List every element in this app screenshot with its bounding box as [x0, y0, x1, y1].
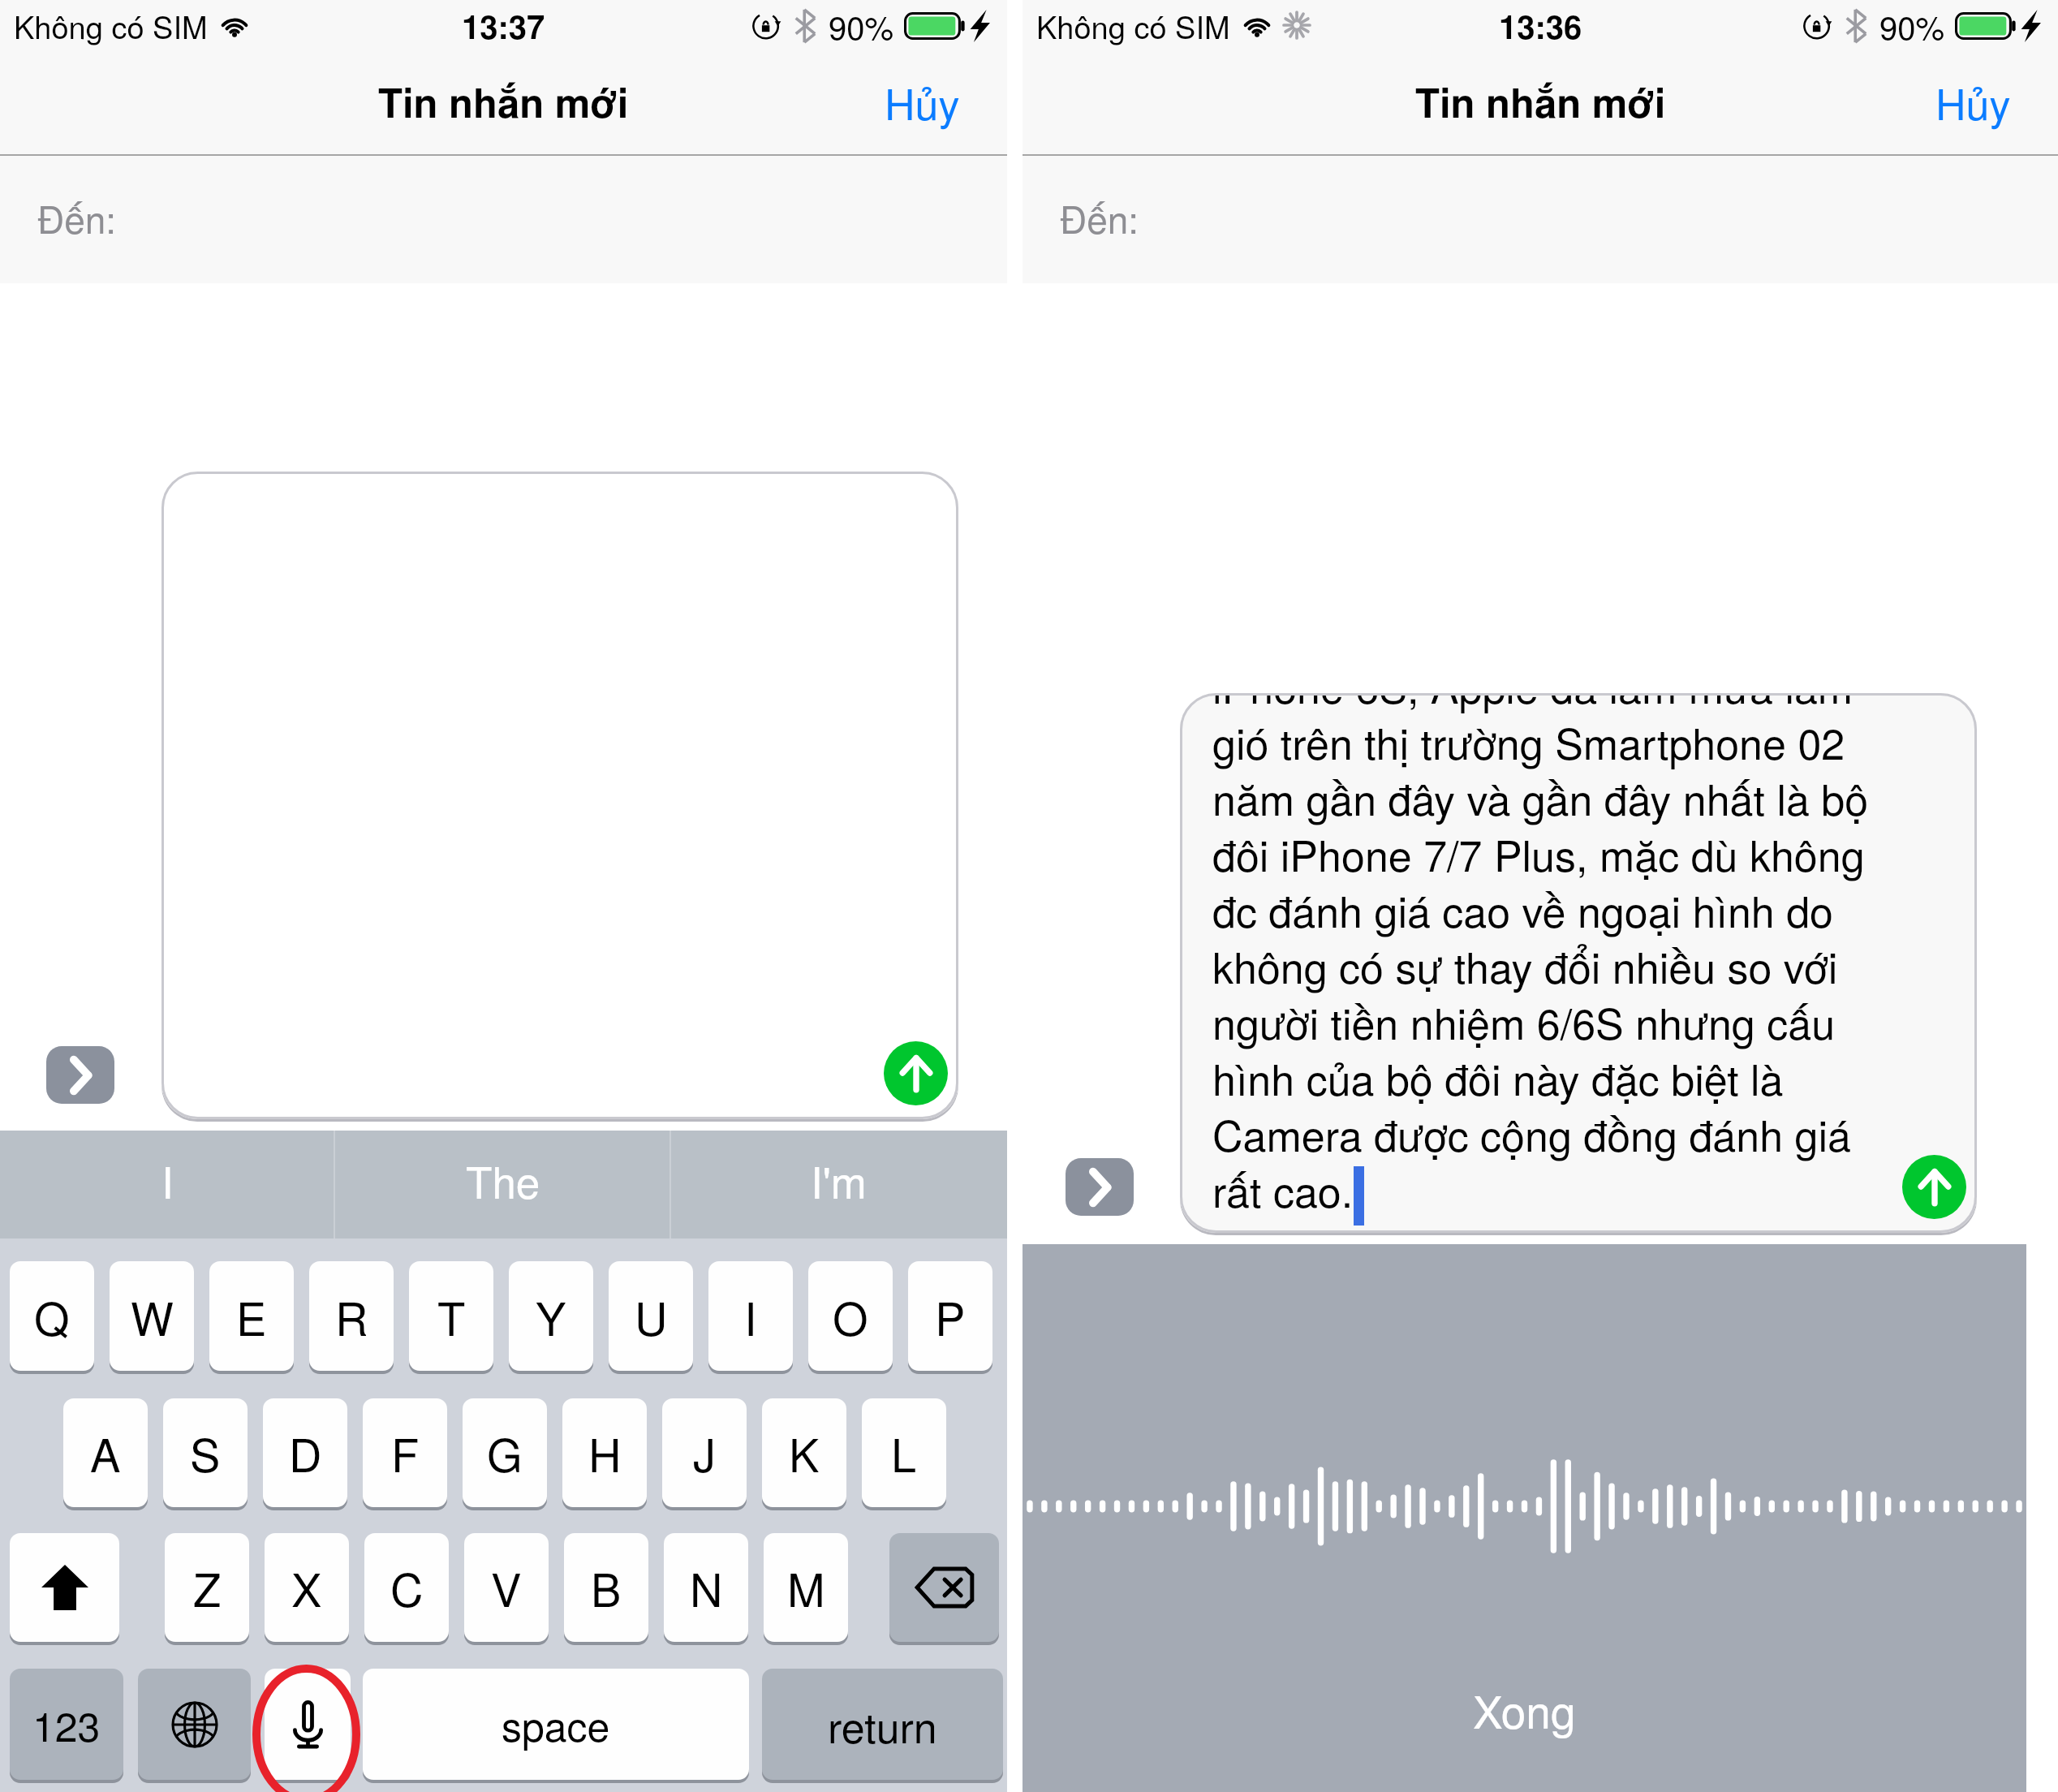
button[interactable]: Xóa	[889, 1533, 999, 1642]
staticText: Không có SIM	[1036, 3, 1230, 47]
button[interactable]: M	[764, 1533, 848, 1642]
staticText: J	[693, 1420, 716, 1485]
staticText: E	[236, 1284, 267, 1349]
button[interactable]: Đọc chính tả	[265, 1669, 351, 1780]
button[interactable]: C	[364, 1533, 449, 1642]
button[interactable]: Gửi	[1902, 1155, 1966, 1219]
staticText: Đến:	[1060, 191, 1139, 244]
staticText: Camera được cộng đồng đánh giá	[1212, 1103, 1851, 1163]
staticText: V	[491, 1555, 522, 1620]
staticText: X	[291, 1555, 322, 1620]
staticText: Hủy	[885, 71, 960, 131]
staticText: R	[335, 1284, 368, 1349]
staticText: Y	[536, 1284, 566, 1349]
staticText: K	[789, 1420, 820, 1485]
staticText: đc đánh giá cao về ngoại hình do	[1212, 879, 1834, 939]
staticText: return	[828, 1695, 937, 1755]
button[interactable]: return	[762, 1669, 1003, 1780]
button[interactable]: space	[363, 1669, 749, 1780]
staticText: C	[390, 1555, 424, 1620]
staticText: người tiền nhiệm 6/6S nhưng cấu	[1212, 991, 1836, 1051]
button[interactable]: I	[0, 1131, 335, 1238]
button[interactable]: I	[708, 1261, 793, 1371]
button[interactable]: S	[163, 1398, 248, 1507]
button[interactable]: V	[464, 1533, 549, 1642]
staticText: gió trên thị trường Smartphone 02	[1212, 711, 1845, 771]
button[interactable]: Mở rộng	[46, 1046, 114, 1104]
button[interactable]: Gửi	[884, 1041, 948, 1105]
button[interactable]: 123	[10, 1669, 123, 1780]
staticText: 90%	[1879, 2, 1945, 49]
button[interactable]: B	[564, 1533, 648, 1642]
staticText: năm gần đây và gần đây nhất là bộ	[1212, 767, 1869, 827]
staticText: 13:36	[1499, 2, 1582, 49]
button[interactable]: L	[862, 1398, 946, 1507]
staticText: Z	[193, 1555, 222, 1620]
button[interactable]: P	[908, 1261, 992, 1371]
staticText: I	[161, 1149, 174, 1211]
staticText: Hủy	[1935, 71, 2011, 131]
staticText: không có sự thay đổi nhiều so với	[1212, 935, 1838, 995]
button[interactable]: X	[265, 1533, 349, 1642]
button[interactable]: T	[409, 1261, 493, 1371]
button[interactable]: Hủy	[885, 71, 960, 131]
button[interactable]: Đến:	[1023, 156, 2058, 283]
staticText: I'm	[811, 1149, 868, 1211]
button[interactable]: D	[263, 1398, 347, 1507]
staticText: H	[588, 1420, 622, 1485]
button[interactable]: Q	[10, 1261, 94, 1371]
staticText: M	[787, 1555, 825, 1620]
staticText: B	[591, 1555, 622, 1620]
staticText: Tin nhắn mới	[378, 73, 629, 130]
button[interactable]: Hủy	[1935, 71, 2011, 131]
button[interactable]: G	[463, 1398, 547, 1507]
button[interactable]: The	[335, 1131, 671, 1238]
staticText: Tin nhắn mới	[1415, 73, 1666, 130]
staticText: U	[635, 1284, 668, 1349]
button[interactable]: K	[762, 1398, 846, 1507]
staticText: Đến:	[37, 191, 117, 244]
staticText: iPhone 6S, Apple đã làm mưa làm	[1212, 693, 1853, 715]
staticText: rất cao.	[1212, 1159, 1354, 1219]
staticText: space	[502, 1695, 610, 1754]
button[interactable]: N	[664, 1533, 748, 1642]
staticText: hình của bộ đôi này đặc biệt là	[1212, 1047, 1784, 1107]
button[interactable]: F	[363, 1398, 447, 1507]
button[interactable]: E	[209, 1261, 294, 1371]
button[interactable]: O	[808, 1261, 893, 1371]
button[interactable]	[161, 472, 958, 1119]
button[interactable]: W	[110, 1261, 194, 1371]
button[interactable]: A	[63, 1398, 148, 1507]
button[interactable]: Y	[509, 1261, 593, 1371]
staticText: A	[90, 1420, 121, 1485]
button[interactable]: Xong	[1473, 1678, 1576, 1742]
button[interactable]: H	[562, 1398, 647, 1507]
button[interactable]: Ngôn ngữ	[138, 1669, 251, 1780]
staticText: 13:37	[462, 2, 545, 49]
button[interactable]: Z	[165, 1533, 249, 1642]
button[interactable]: U	[609, 1261, 693, 1371]
staticText: D	[289, 1420, 322, 1485]
staticText: W	[131, 1284, 174, 1349]
staticText: F	[391, 1420, 420, 1485]
staticText: N	[690, 1555, 723, 1620]
button[interactable]: I'm	[671, 1131, 1007, 1238]
staticText: L	[891, 1420, 917, 1485]
staticText: P	[935, 1284, 966, 1349]
staticText: I	[744, 1284, 757, 1349]
button[interactable]: Shift	[10, 1533, 119, 1642]
staticText: 90%	[829, 2, 894, 49]
button[interactable]: J	[662, 1398, 747, 1507]
staticText: 123	[32, 1695, 101, 1754]
staticText: O	[833, 1284, 868, 1349]
staticText: Xong	[1473, 1678, 1576, 1742]
staticText: S	[190, 1420, 221, 1485]
button[interactable]: R	[309, 1261, 394, 1371]
button[interactable]: Đến:	[0, 156, 1007, 283]
staticText: The	[466, 1149, 540, 1211]
staticText: Q	[34, 1284, 70, 1349]
button[interactable]: Mở rộng	[1066, 1158, 1134, 1216]
staticText: T	[437, 1284, 466, 1349]
staticText: đôi iPhone 7/7 Plus, mặc dù không	[1212, 823, 1865, 883]
button[interactable]: iPhone 6S, Apple đã làm mưa làm	[1180, 693, 1977, 1233]
